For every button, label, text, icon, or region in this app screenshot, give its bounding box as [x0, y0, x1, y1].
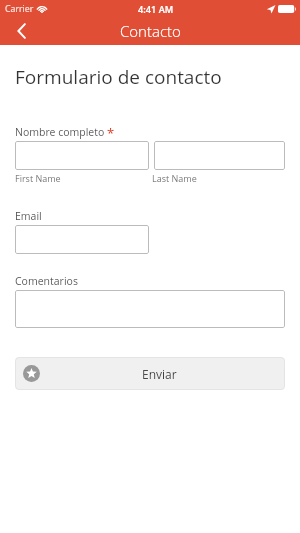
staticText: Formulario de contacto	[15, 64, 222, 90]
staticText: Nombre completo	[15, 125, 105, 139]
staticText: *	[107, 124, 115, 140]
staticText: Carrier	[5, 3, 34, 15]
staticText: Last Name	[152, 172, 197, 184]
button[interactable]	[15, 141, 149, 170]
staticText: Contacto	[120, 21, 181, 41]
button[interactable]	[15, 225, 149, 254]
button[interactable]	[154, 141, 285, 170]
button[interactable]: Enviar	[15, 357, 285, 390]
button[interactable]	[15, 290, 285, 328]
staticText: Email	[15, 209, 42, 223]
button[interactable]: Back	[8, 17, 36, 45]
staticText: Enviar	[142, 366, 177, 382]
staticText: Comentarios	[15, 274, 78, 288]
staticText: 4:41 AM	[138, 3, 174, 16]
staticText: First Name	[15, 172, 61, 184]
